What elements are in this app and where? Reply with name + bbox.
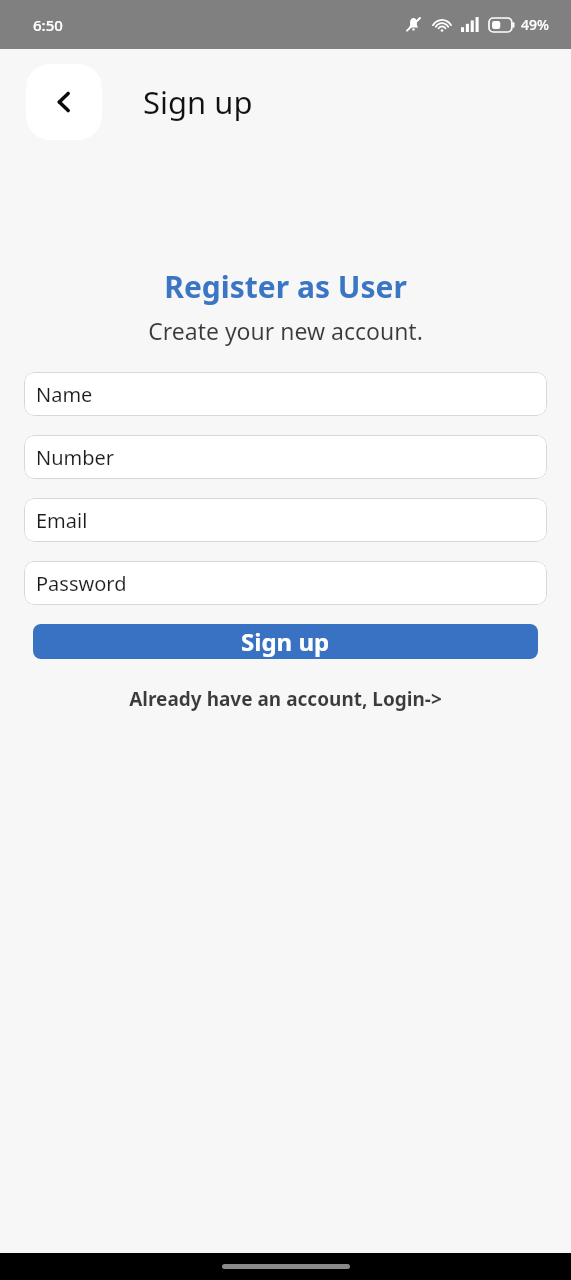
button[interactable]: Email [24, 498, 547, 542]
staticText: Sign up [143, 81, 253, 123]
button[interactable]: Already have an account, Login-> [24, 680, 547, 718]
button[interactable]: Name [24, 372, 547, 416]
staticText: Password [36, 570, 127, 597]
button[interactable]: Password [24, 561, 547, 605]
staticText: 6:50 [33, 15, 63, 35]
staticText: Email [36, 507, 88, 534]
staticText: Name [36, 381, 93, 408]
staticText: Create your new account. [148, 315, 423, 346]
button[interactable]: Number [24, 435, 547, 479]
staticText: 49% [521, 15, 549, 34]
button[interactable]: Back [26, 64, 102, 140]
staticText: Number [36, 444, 115, 471]
staticText: Already have an account, Login-> [129, 686, 442, 712]
staticText: Sign up [241, 625, 330, 658]
button[interactable]: Sign up [33, 624, 538, 659]
staticText: Register as User [164, 266, 407, 307]
